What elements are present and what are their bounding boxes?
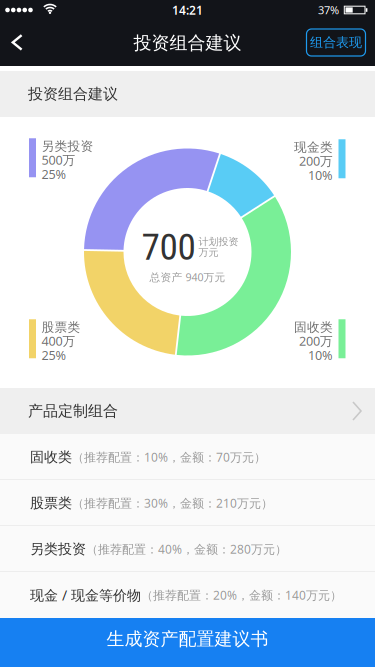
staticText: 固收类 <box>30 448 72 466</box>
staticText: 25% <box>41 165 66 183</box>
button[interactable]: 生成资产配置建议书 <box>0 618 375 667</box>
staticText: （推荐配置：30%，金额：210万元） <box>72 495 273 511</box>
button[interactable]: 产品定制组合 <box>0 388 375 434</box>
staticText: 投资组合建议 <box>133 32 241 54</box>
staticText: 现金 / 现金等价物 <box>30 585 141 605</box>
staticText: 200万 <box>299 152 333 169</box>
staticText: 总资产 940万元 <box>149 270 225 284</box>
staticText: 500万 <box>41 151 75 168</box>
staticText: （推荐配置：10%，金额：70万元） <box>72 449 266 465</box>
staticText: 700 <box>141 225 195 269</box>
staticText: 另类投资 <box>30 540 86 558</box>
staticText: 生成资产配置建议书 <box>106 628 268 650</box>
staticText: 产品定制组合 <box>28 402 118 420</box>
button[interactable] <box>0 22 44 66</box>
staticText: 现金类 <box>294 139 333 155</box>
staticText: （推荐配置：20%，金额：140万元） <box>141 587 342 603</box>
staticText: 股票类 <box>30 494 72 512</box>
button[interactable]: 组合表现 <box>306 29 365 56</box>
staticText: 另类投资 <box>41 138 93 154</box>
staticText: 37% <box>318 2 339 17</box>
staticText: 股票类 <box>41 319 80 335</box>
staticText: 200万 <box>299 332 333 349</box>
staticText: 10% <box>308 346 333 364</box>
staticText: 10% <box>308 166 333 184</box>
staticText: 25% <box>41 346 66 364</box>
staticText: 投资组合建议 <box>28 85 118 103</box>
staticText: 固收类 <box>294 319 333 335</box>
staticText: 组合表现 <box>310 34 362 51</box>
staticText: 万元 <box>198 246 218 259</box>
staticText: （推荐配置：40%，金额：280万元） <box>86 541 287 557</box>
staticText: 计划投资 <box>198 235 238 248</box>
staticText: 14:21 <box>172 2 203 18</box>
staticText: 400万 <box>41 332 75 349</box>
